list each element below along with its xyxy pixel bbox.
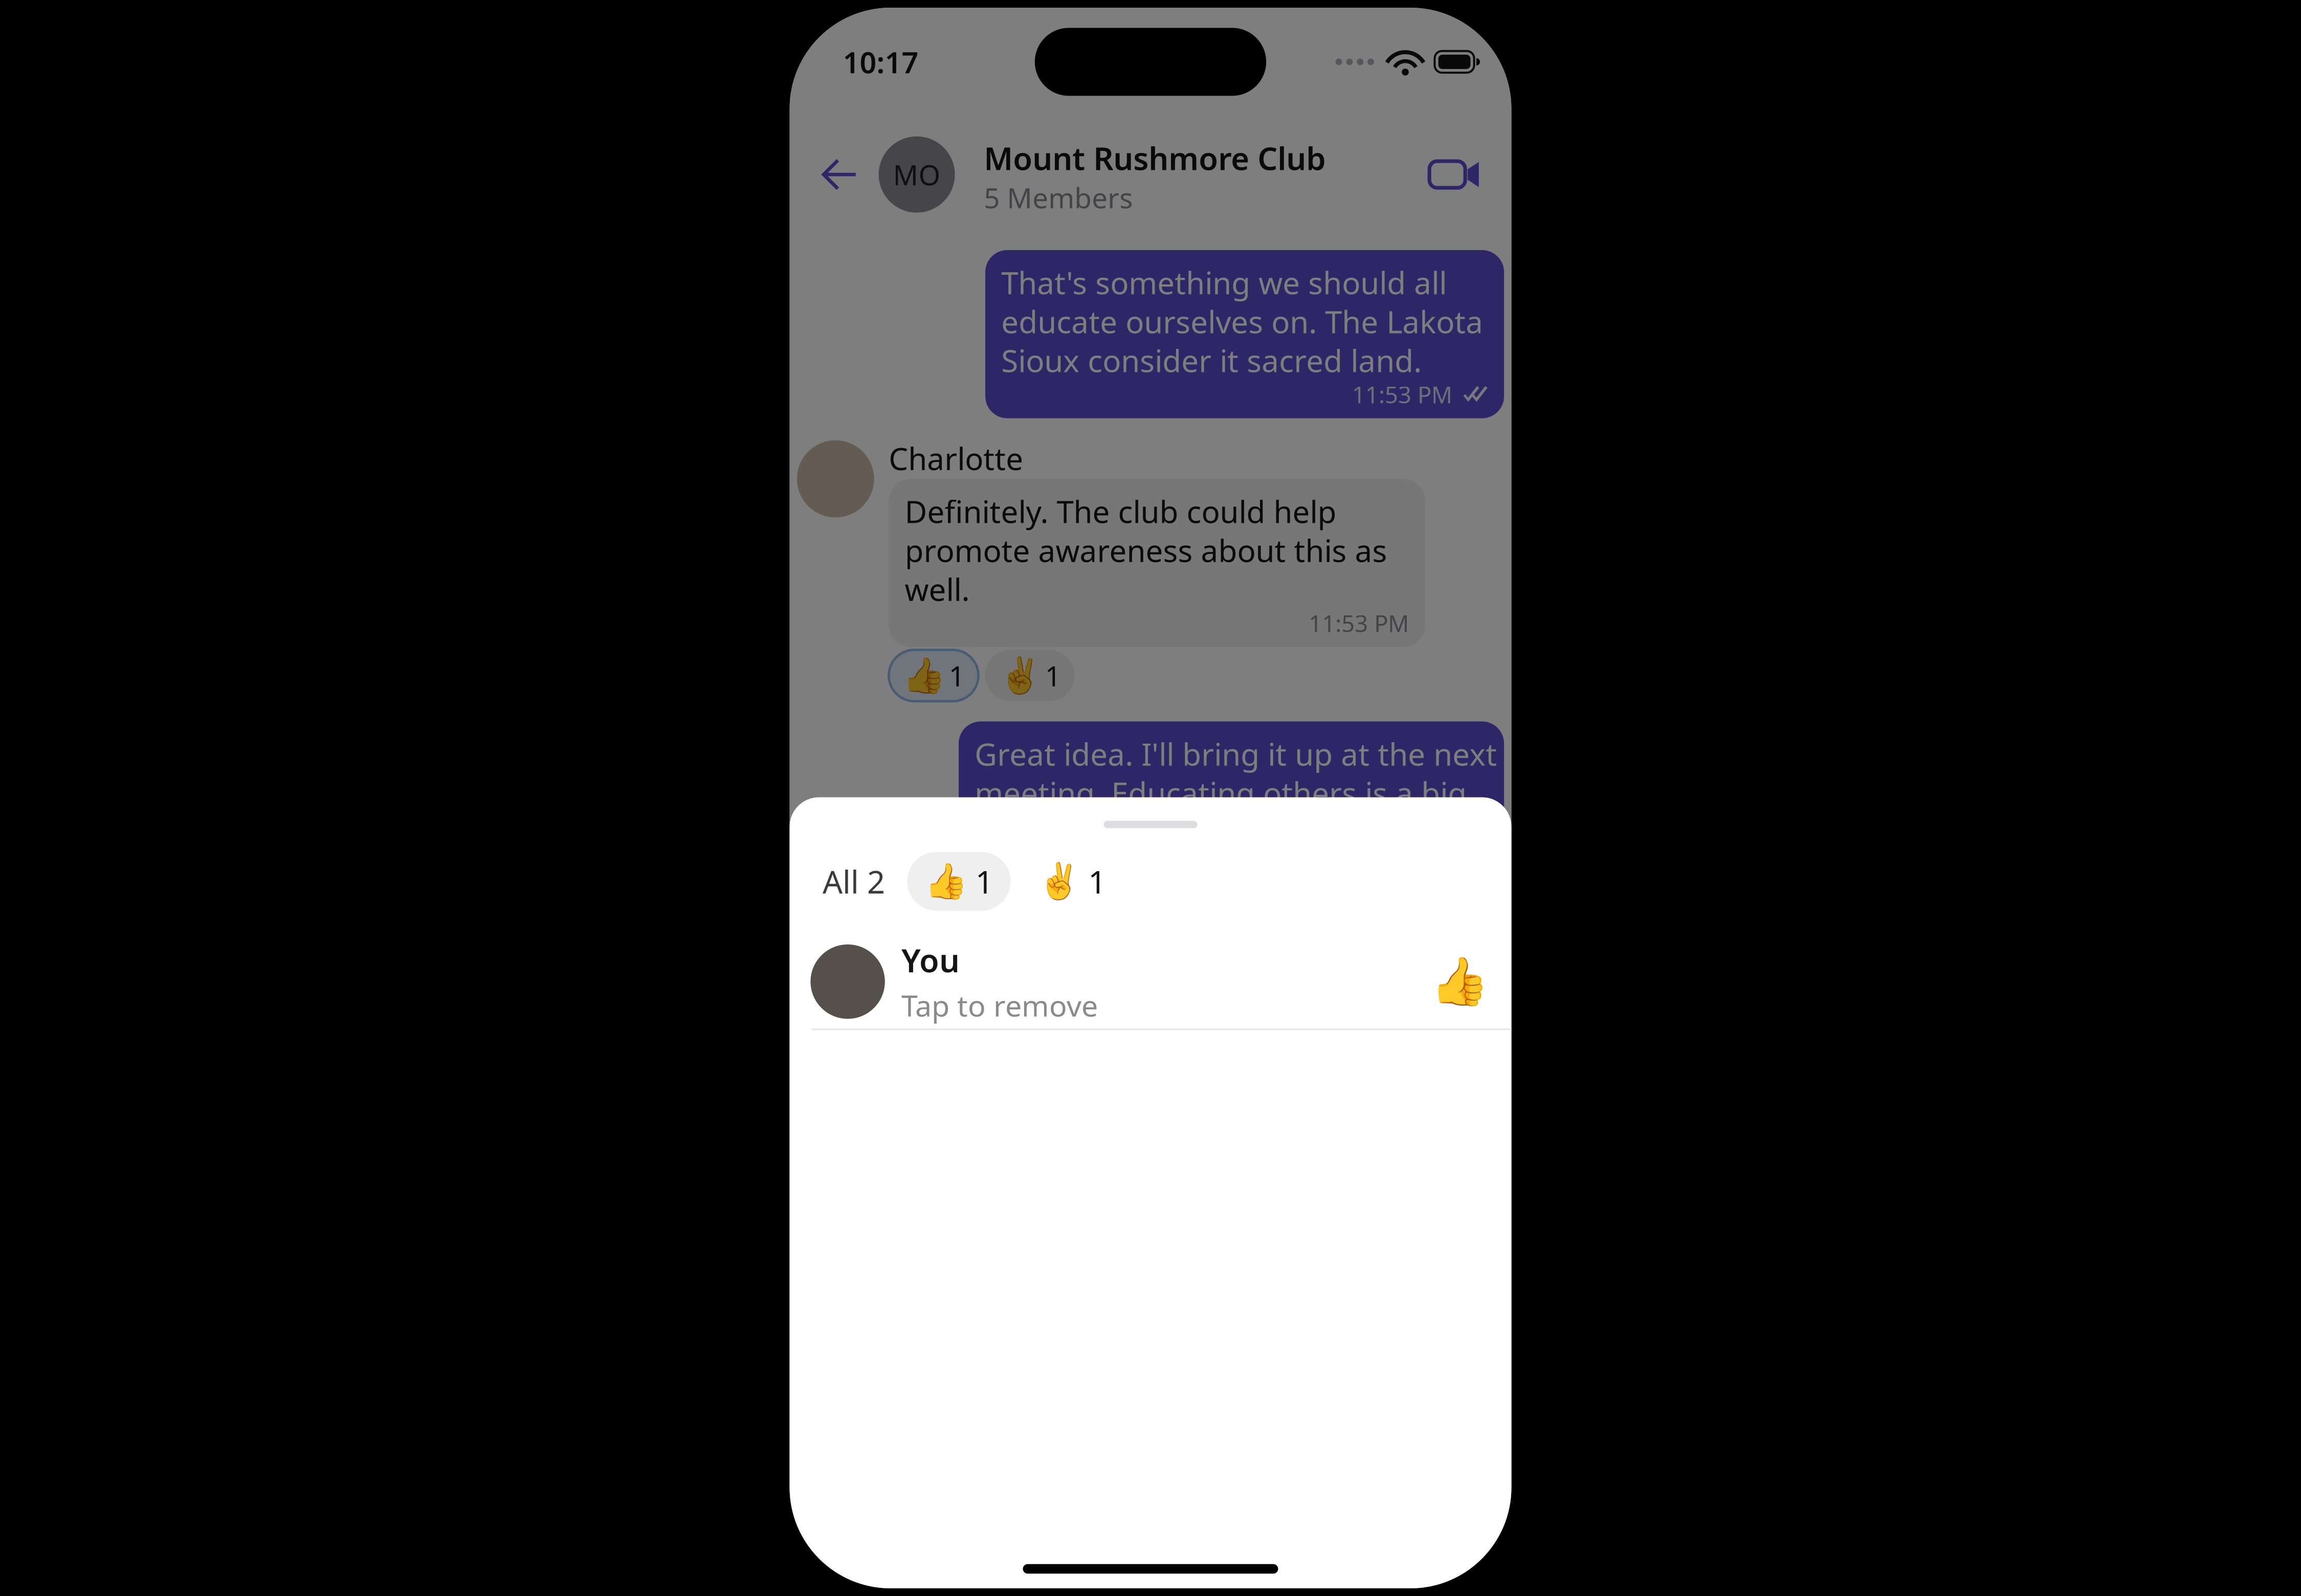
staticText: 👍 (925, 861, 968, 901)
staticText: 1 (975, 861, 993, 902)
button[interactable]: 👍 (889, 650, 978, 701)
button[interactable]: ✌️ (985, 650, 1075, 701)
staticText: Mount Rushmore Club (984, 137, 1326, 179)
button[interactable]: ✌️ (1020, 852, 1124, 911)
button[interactable]: Back (798, 134, 879, 215)
staticText: You (901, 939, 960, 981)
staticText: Definitely. The club could help (905, 491, 1337, 532)
staticText: MO (893, 156, 941, 193)
staticText: 1 (949, 657, 965, 694)
staticText: promote awareness about this as (905, 530, 1387, 571)
button[interactable]: You (790, 934, 1511, 1029)
staticText: educate ourselves on. The Lakota (1001, 301, 1483, 342)
staticText: part of why the club exists. (975, 811, 1362, 852)
button[interactable]: All 2 (804, 852, 903, 911)
staticText: 5 Members (984, 179, 1133, 216)
staticText: 1 (1045, 657, 1061, 694)
staticText: Great idea. I'll bring it up at the next (975, 733, 1497, 774)
staticText: 👍 (1431, 955, 1489, 1008)
staticText: ✌️ (1037, 861, 1081, 901)
staticText: 10:17 (843, 42, 919, 81)
staticText: ✌️ (999, 656, 1042, 695)
staticText: Charlotte (889, 438, 1023, 479)
staticText: well. (905, 569, 970, 609)
staticText: Sioux consider it sacred land. (1001, 340, 1422, 381)
button[interactable]: Mount Rushmore Club (984, 132, 1326, 217)
button[interactable]: Start video call (1414, 134, 1495, 215)
staticText: 1 (1088, 861, 1106, 902)
staticText: 11:53 PM (1352, 379, 1452, 410)
staticText: That's something we should all (1001, 262, 1447, 303)
staticText: Tap to remove (901, 986, 1098, 1025)
button[interactable]: 👍 (907, 852, 1011, 911)
staticText: 👍 (903, 656, 946, 695)
staticText: meeting. Educating others is a big (975, 772, 1467, 813)
staticText: 11:53 PM (1309, 608, 1409, 639)
staticText: All 2 (823, 861, 885, 902)
